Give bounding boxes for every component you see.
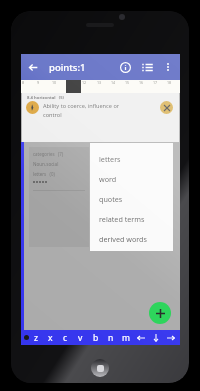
staticText: c [63,332,68,344]
staticText: points:1 [49,61,86,74]
button[interactable]: n [103,330,118,345]
staticText: Ability to coerce, influence or [43,102,120,110]
staticText: 17 [153,80,158,85]
button[interactable]: Info [114,56,136,78]
staticText: 12 [82,80,87,85]
button[interactable]: Hide keyboard [148,330,163,345]
button[interactable]: 12 [81,80,96,93]
staticText: derived words [99,234,147,244]
button[interactable]: 17 [152,80,166,93]
button[interactable]: 8 [21,80,36,93]
staticText: quotes [99,194,123,204]
button[interactable]: 14 [110,80,124,93]
button[interactable]: Add [149,302,171,324]
button[interactable]: 9 [36,80,51,93]
button[interactable]: v [73,330,88,345]
button[interactable]: Home [91,359,109,377]
button[interactable]: Close hint [160,101,173,114]
button[interactable]: Hint [26,101,39,114]
button[interactable]: List [136,56,158,78]
button[interactable]: Shift [24,335,29,340]
button[interactable]: z [29,330,43,345]
staticText: letters (0) [33,171,55,177]
staticText: 8.4 horizontal (5) [27,95,64,101]
button[interactable]: 13 [96,80,110,93]
staticText: z [34,332,38,344]
button[interactable]: related terms [90,209,173,229]
staticText: m [122,332,130,344]
staticText: word [99,174,117,184]
staticText: n [108,332,114,344]
staticText: x [48,332,53,344]
button[interactable]: letters [90,149,173,169]
button[interactable]: 10 [51,80,66,93]
button[interactable]: More options [158,57,178,77]
staticText: 15 [125,80,130,85]
staticText: Noun.social [33,161,59,167]
staticText: 10 [52,80,57,85]
button[interactable]: 16 [138,80,152,93]
staticText: control [43,111,62,119]
button[interactable]: Backspace [133,330,148,345]
button[interactable]: derived words [90,229,173,249]
staticText: 16 [139,80,144,85]
staticText: 8 [22,80,25,85]
button[interactable]: b [88,330,103,345]
button[interactable]: Back [21,55,45,79]
button[interactable]: m [118,330,133,345]
button[interactable]: word [90,169,173,189]
staticText: b [93,332,99,344]
staticText: 9 [37,80,40,85]
staticText: 14 [111,80,116,85]
staticText: categories (7) [33,151,64,157]
staticText: related terms [99,214,145,224]
staticText: letters [99,154,121,164]
button[interactable]: 18 [166,80,180,93]
button[interactable]: c [58,330,73,345]
staticText: v [78,332,83,344]
staticText: 18 [167,80,172,85]
button[interactable]: quotes [90,189,173,209]
button[interactable]: x [43,330,58,345]
staticText: 13 [97,80,102,85]
button[interactable]: Enter [163,330,178,345]
button[interactable]: 15 [124,80,138,93]
